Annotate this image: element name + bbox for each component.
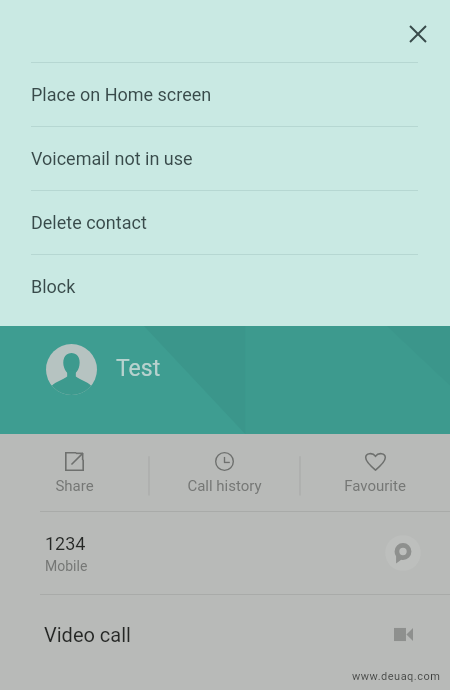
staticText: Video call: [44, 623, 131, 646]
button[interactable]: Block: [0, 255, 450, 318]
staticText: Voicemail not in use: [31, 148, 193, 169]
staticText: Favourite: [344, 477, 406, 495]
staticText: Mobile: [45, 558, 88, 574]
button[interactable]: Share: [0, 434, 149, 511]
staticText: Test: [116, 355, 161, 382]
button[interactable]: Send message: [384, 534, 422, 572]
button[interactable]: Video call: [0, 595, 450, 677]
button[interactable]: Close: [396, 12, 440, 56]
staticText: 1234: [45, 533, 86, 554]
button[interactable]: 1234: [0, 512, 450, 594]
staticText: Block: [31, 276, 76, 297]
button[interactable]: Voicemail not in use: [0, 127, 450, 190]
staticText: Share: [55, 477, 94, 495]
staticText: Call history: [187, 477, 262, 495]
button[interactable]: Call history: [149, 434, 300, 511]
button[interactable]: Place on Home screen: [0, 63, 450, 126]
staticText: Place on Home screen: [31, 84, 212, 105]
staticText: www.deuaq.com: [352, 670, 441, 683]
button[interactable]: Delete contact: [0, 191, 450, 254]
button[interactable]: Favourite: [300, 434, 450, 511]
staticText: Delete contact: [31, 212, 147, 233]
